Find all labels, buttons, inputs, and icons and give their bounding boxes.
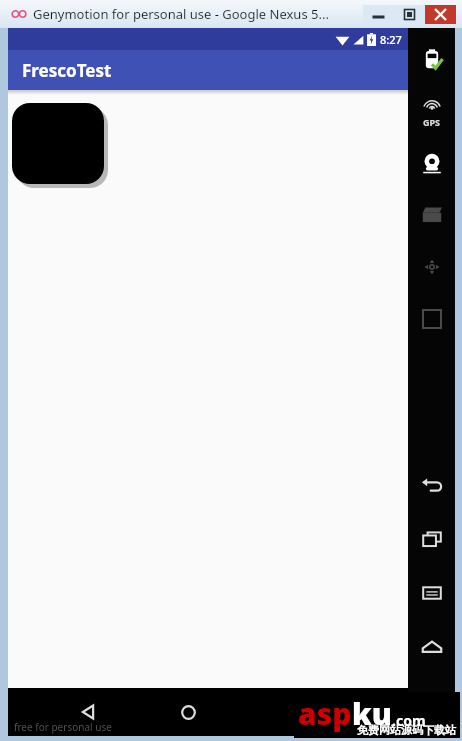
button[interactable]: Minimize bbox=[363, 5, 394, 24]
button[interactable]: Close bbox=[425, 5, 456, 24]
button[interactable]: FrescoTest bbox=[8, 50, 408, 90]
staticText: asp bbox=[298, 693, 352, 734]
button[interactable]: Back bbox=[66, 690, 110, 734]
button[interactable]: D-pad bbox=[415, 250, 449, 284]
staticText: .com bbox=[392, 711, 426, 730]
button[interactable]: GPS bbox=[412, 98, 452, 128]
staticText: 免费网站源码下载站 bbox=[357, 723, 456, 737]
button[interactable]: Record video bbox=[415, 198, 449, 232]
button[interactable]: Menu bbox=[415, 576, 449, 610]
button[interactable]: Image bbox=[12, 103, 104, 184]
button[interactable]: Battery bbox=[415, 42, 449, 76]
staticText: 8:27 bbox=[380, 32, 402, 47]
staticText: ku bbox=[352, 693, 392, 734]
button[interactable]: Home bbox=[166, 690, 210, 734]
button[interactable]: Camera bbox=[415, 146, 449, 180]
button[interactable]: Home bbox=[415, 630, 449, 664]
button[interactable]: Recents bbox=[415, 522, 449, 556]
button[interactable]: ID bbox=[415, 302, 449, 336]
staticText: free for personal use bbox=[14, 720, 112, 734]
staticText: GPS bbox=[423, 116, 441, 128]
staticText: Genymotion for personal use - Google Nex… bbox=[33, 5, 329, 23]
button[interactable]: Back bbox=[415, 468, 449, 502]
staticText: FrescoTest bbox=[22, 59, 112, 82]
button[interactable]: Maximize bbox=[394, 5, 425, 24]
